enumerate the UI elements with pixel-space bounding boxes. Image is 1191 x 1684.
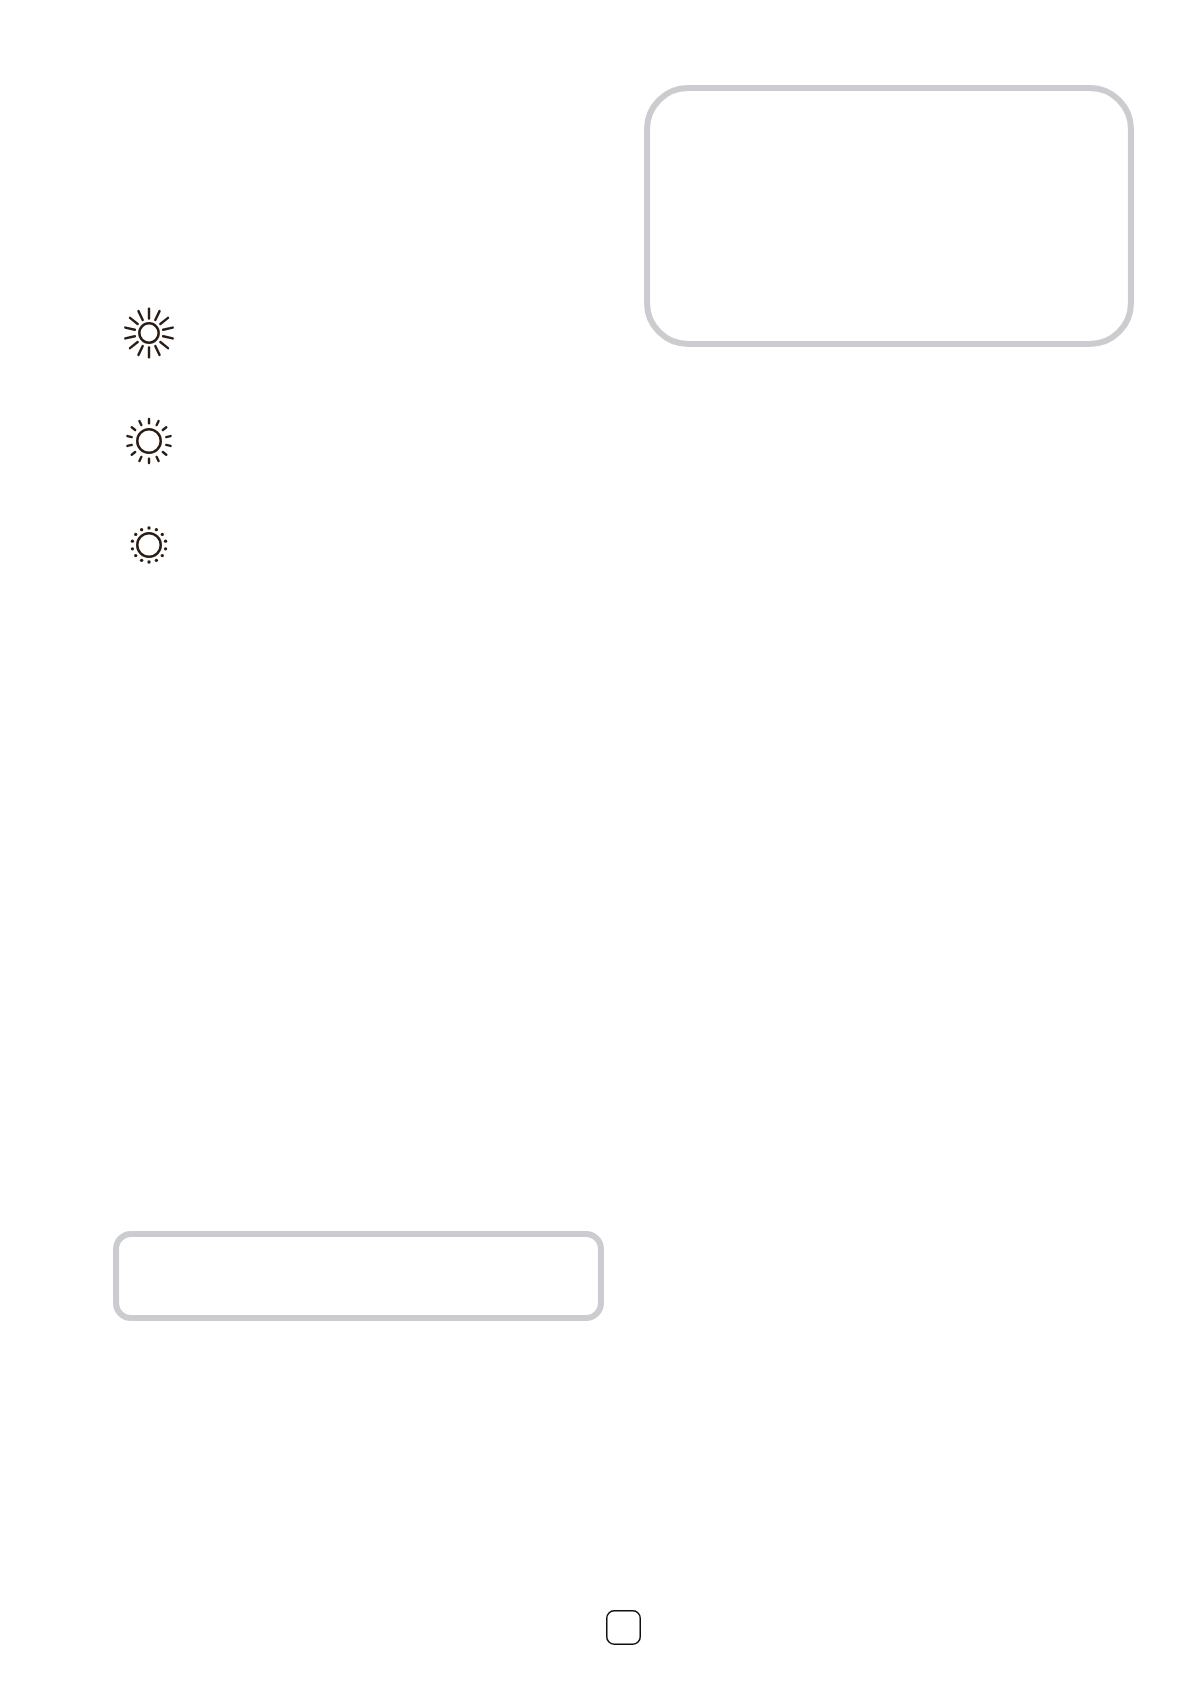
button[interactable]: Preview card <box>644 85 1134 347</box>
button[interactable]: Brightness medium <box>115 407 183 475</box>
button[interactable]: Action button <box>113 1231 604 1321</box>
button[interactable]: Brightness high <box>115 299 183 367</box>
button[interactable]: Recents <box>606 1610 641 1645</box>
button[interactable]: Brightness low <box>115 511 183 579</box>
